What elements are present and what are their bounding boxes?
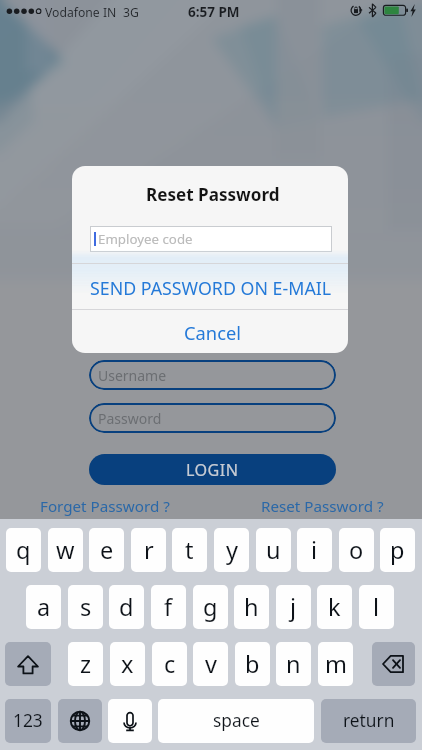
- button[interactable]: s: [68, 585, 103, 629]
- staticText: p: [390, 534, 405, 566]
- staticText: r: [144, 534, 154, 566]
- button[interactable]: l: [359, 585, 394, 629]
- button[interactable]: Shift: [5, 642, 51, 686]
- staticText: Cancel: [184, 320, 241, 345]
- button[interactable]: b: [235, 642, 270, 686]
- button[interactable]: k: [317, 585, 352, 629]
- staticText: k: [328, 591, 341, 623]
- staticText: w: [56, 534, 75, 566]
- staticText: y: [226, 534, 238, 566]
- staticText: d: [119, 591, 134, 623]
- staticText: Reset Password ?: [261, 496, 384, 517]
- button[interactable]: p: [380, 528, 415, 572]
- staticText: 3G: [123, 4, 139, 21]
- button[interactable]: t: [172, 528, 207, 572]
- staticText: o: [349, 534, 364, 566]
- button[interactable]: r: [131, 528, 166, 572]
- staticText: e: [100, 534, 114, 566]
- staticText: t: [185, 534, 194, 566]
- staticText: Username: [98, 366, 167, 385]
- button[interactable]: d: [109, 585, 144, 629]
- button[interactable]: Reset Password ?: [261, 496, 384, 517]
- button[interactable]: f: [151, 585, 186, 629]
- button[interactable]: space: [158, 699, 314, 743]
- staticText: q: [16, 534, 31, 566]
- staticText: Forget Password ?: [40, 496, 170, 517]
- button[interactable]: y: [214, 528, 249, 572]
- staticText: g: [203, 591, 218, 623]
- staticText: b: [245, 648, 260, 680]
- button[interactable]: Backspace: [372, 642, 415, 686]
- button[interactable]: e: [89, 528, 124, 572]
- staticText: m: [325, 648, 347, 680]
- button[interactable]: Cancel: [72, 310, 348, 353]
- staticText: f: [164, 591, 173, 623]
- button[interactable]: z: [68, 642, 103, 686]
- button[interactable]: x: [110, 642, 145, 686]
- button[interactable]: a: [26, 585, 61, 629]
- button[interactable]: LOGIN: [89, 454, 336, 485]
- staticText: u: [266, 534, 281, 566]
- button[interactable]: Dictate: [108, 699, 152, 743]
- button[interactable]: c: [152, 642, 187, 686]
- staticText: 6:57 PM: [188, 3, 240, 21]
- staticText: Reset Password: [146, 183, 280, 206]
- button[interactable]: Employee code: [90, 226, 332, 252]
- staticText: Employee code: [98, 230, 193, 248]
- staticText: z: [80, 648, 92, 680]
- staticText: i: [311, 534, 318, 566]
- button[interactable]: u: [256, 528, 291, 572]
- button[interactable]: o: [339, 528, 374, 572]
- button[interactable]: q: [6, 528, 41, 572]
- staticText: Password: [98, 409, 162, 428]
- staticText: SEND PASSWORD ON E-MAIL: [90, 276, 332, 300]
- button[interactable]: i: [297, 528, 332, 572]
- staticText: LOGIN: [186, 459, 239, 481]
- button[interactable]: n: [276, 642, 311, 686]
- button[interactable]: 123: [5, 699, 51, 743]
- staticText: n: [286, 648, 301, 680]
- button[interactable]: w: [48, 528, 83, 572]
- button[interactable]: Switch keyboard: [58, 699, 102, 743]
- staticText: c: [164, 648, 176, 680]
- button[interactable]: j: [276, 585, 311, 629]
- staticText: space: [213, 709, 260, 733]
- staticText: 123: [13, 709, 43, 733]
- staticText: return: [343, 709, 395, 733]
- button[interactable]: SEND PASSWORD ON E-MAIL: [72, 263, 348, 309]
- staticText: j: [290, 591, 297, 623]
- staticText: l: [373, 591, 380, 623]
- button[interactable]: h: [234, 585, 269, 629]
- button[interactable]: return: [321, 699, 416, 743]
- button[interactable]: m: [318, 642, 353, 686]
- staticText: v: [205, 648, 217, 680]
- button[interactable]: Password: [89, 403, 336, 433]
- staticText: x: [121, 648, 134, 680]
- button[interactable]: g: [193, 585, 228, 629]
- button[interactable]: v: [193, 642, 228, 686]
- staticText: s: [80, 591, 92, 623]
- staticText: Vodafone IN: [45, 4, 117, 21]
- staticText: a: [37, 591, 51, 623]
- button[interactable]: Forget Password ?: [40, 496, 170, 517]
- staticText: h: [244, 591, 259, 623]
- button[interactable]: Username: [89, 360, 336, 390]
